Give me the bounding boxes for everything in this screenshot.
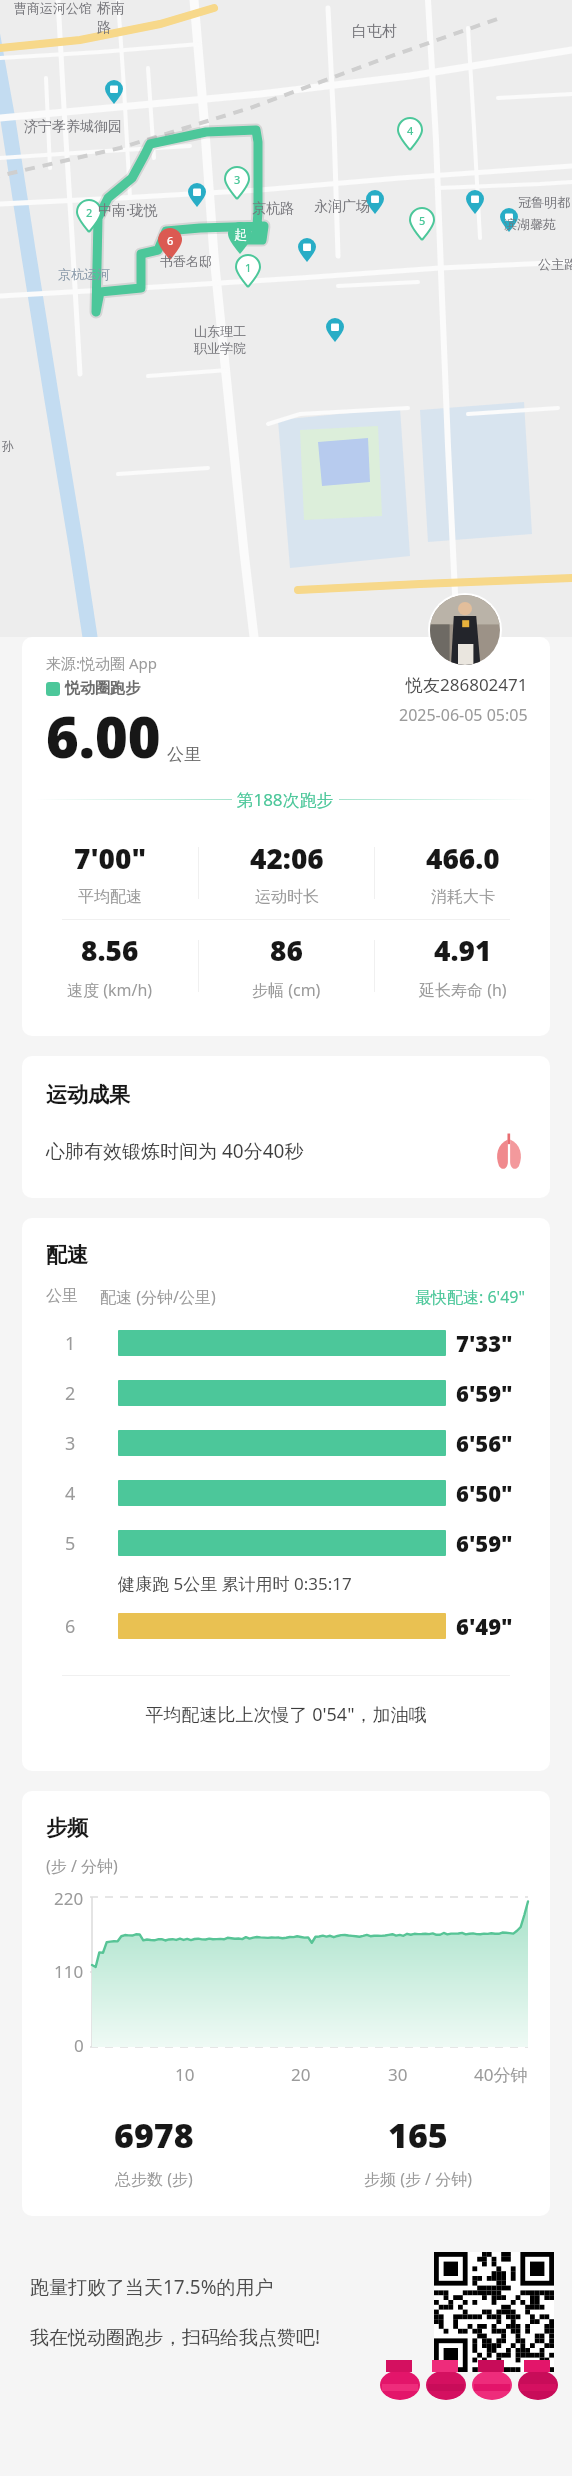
staticText: 110 [54,1960,84,1983]
staticText: 6978 [114,2112,194,2158]
staticText: 10 [175,2063,195,2086]
staticText: 0 [74,2034,84,2057]
button[interactable]: User avatar [430,595,500,665]
staticText: 平均配速比上次慢了 0'54"，加油哦 [22,1702,550,1727]
staticText: 最快配速: 6'49" [415,1286,526,1308]
staticText: 延长寿命 (h) [419,979,507,1001]
staticText: 42:06 [250,839,324,877]
staticText: 40分钟 [474,2063,528,2086]
staticText: 步幅 (cm) [252,979,321,1001]
staticText: 20 [291,2063,311,2086]
staticText: 跑量打败了当天17.5%的用户 [30,2274,274,2300]
button[interactable]: 6 [22,1601,550,1651]
staticText: 曹商运河公馆 [14,0,92,16]
staticText: 起 [234,226,247,242]
staticText: 公里 [167,744,201,765]
staticText: 桥南 路 [97,0,125,36]
staticText: 京杭路 [252,200,294,218]
staticText: 悦动圈跑步 [65,679,140,698]
staticText: 我在悦动圈跑步，扫码给我点赞吧! [30,2324,321,2350]
staticText: 2 [65,1381,76,1406]
other: QR code [434,2252,554,2372]
staticText: 30 [388,2063,408,2086]
staticText: 总步数 (步) [115,2168,193,2190]
staticText: 第188次跑步 [232,788,339,811]
staticText: 1 [65,1331,76,1356]
button[interactable]: 6978 [22,2112,286,2190]
staticText: 165 [388,2112,448,2158]
staticText: 6.00 [46,698,161,774]
button[interactable]: 466.0 [375,839,550,907]
staticText: 6'56" [456,1428,513,1458]
button[interactable]: 2 [22,1368,550,1418]
staticText: 来源:悦动圈 App [46,653,157,673]
button[interactable]: 3 [22,1418,550,1468]
staticText: 配速 (分钟/公里) [100,1286,415,1308]
staticText: 配速 [46,1242,88,1268]
staticText: 济宁孝养城御园 [24,118,122,136]
staticText: 速度 (km/h) [67,979,153,1001]
staticText: 7'00" [74,839,147,877]
staticText: 466.0 [426,839,500,877]
staticText: 7'33" [456,1328,513,1358]
staticText: 3 [65,1431,76,1456]
button[interactable]: 1 [22,1318,550,1368]
button[interactable]: 86 [199,931,374,1001]
staticText: 孙 [2,438,14,453]
staticText: 3 [234,172,241,187]
staticText: 2025-06-05 05:05 [399,704,528,726]
staticText: 4 [65,1481,76,1506]
button[interactable]: 165 [286,2112,550,2190]
staticText: 8.56 [81,931,139,969]
button[interactable]: 7'00" [22,839,198,907]
staticText: 5 [65,1531,76,1556]
staticText: 冠鲁明都 [518,194,570,210]
staticText: 白屯村 [352,22,397,41]
staticText: 消耗大卡 [431,887,495,907]
staticText: 6'59" [456,1528,513,1558]
staticText: 公主路 [538,256,572,272]
button[interactable]: 4 [22,1468,550,1518]
staticText: 6'50" [456,1478,513,1508]
staticText: 悦友286802471 [406,673,528,696]
staticText: (步 / 分钟) [46,1855,118,1877]
staticText: 书香名邸 [160,253,212,269]
staticText: 6 [167,233,174,248]
staticText: 6'59" [456,1378,513,1408]
staticText: 220 [54,1887,84,1910]
staticText: 心肺有效锻炼时间为 40分40秒 [46,1138,490,1164]
staticText: 永润广场 [314,198,370,216]
staticText: 运动成果 [46,1082,130,1108]
staticText: 1 [245,260,252,275]
staticText: 京杭运河 [58,266,110,282]
staticText: 6 [65,1614,76,1639]
staticText: 4.91 [434,931,492,969]
staticText: 中南·珑悦 [98,200,158,219]
staticText: 步频 (步 / 分钟) [364,2168,473,2190]
staticText: 6'49" [456,1611,513,1641]
staticText: 平均配速 [78,887,142,907]
staticText: 滨湖馨苑 [504,216,556,232]
staticText: 运动时长 [255,887,319,907]
button[interactable]: 8.56 [22,931,198,1001]
staticText: 2 [86,205,93,220]
staticText: 4 [407,123,414,138]
staticText: 86 [270,931,303,969]
staticText: 步频 [46,1815,88,1841]
button[interactable]: 4.91 [375,931,550,1001]
button[interactable]: 42:06 [199,839,374,907]
button[interactable]: 5 [22,1518,550,1568]
staticText: 5 [419,213,426,228]
staticText: 健康跑 5公里 累计用时 0:35:17 [118,1572,352,1595]
staticText: 山东理工 职业学院 [194,323,246,357]
staticText: 公里 [46,1286,78,1306]
